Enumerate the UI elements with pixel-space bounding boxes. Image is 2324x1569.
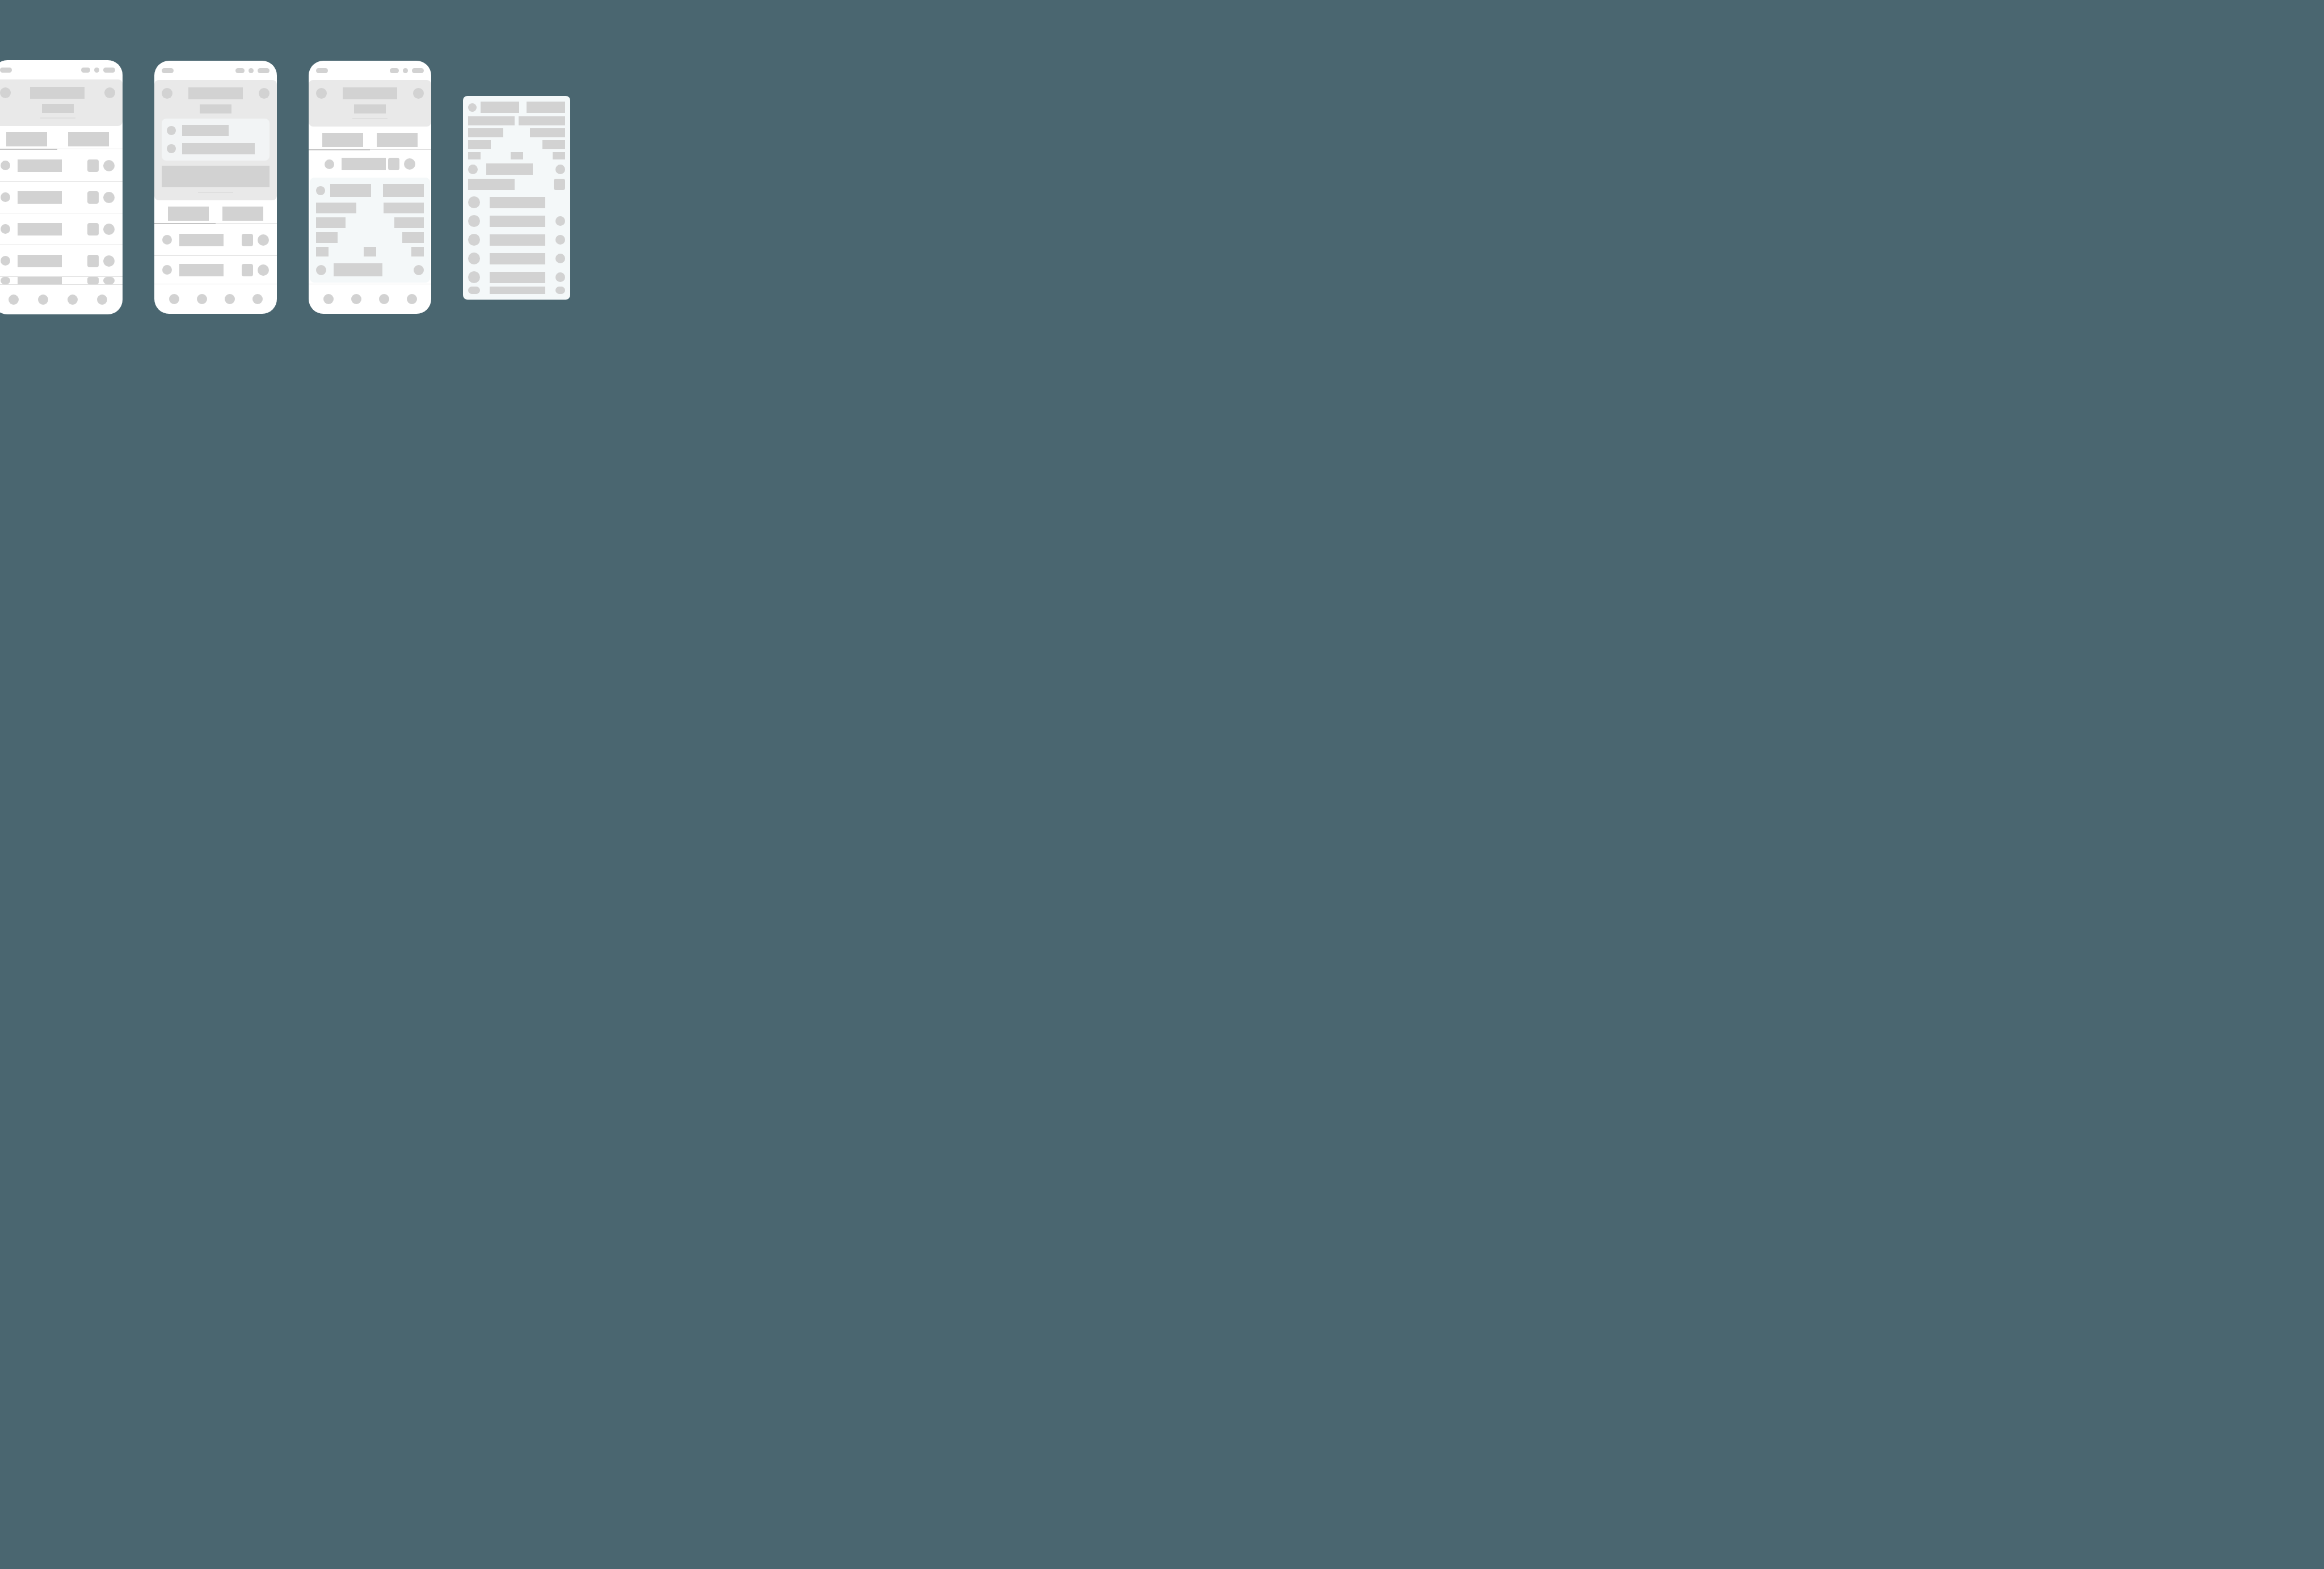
button[interactable]: Tab 3 [216, 284, 243, 314]
button[interactable] [0, 245, 123, 276]
button[interactable]: Tab 3 [370, 284, 398, 314]
button[interactable]: Tab 1 [160, 284, 188, 314]
button[interactable]: Tab 2 [28, 285, 58, 314]
button[interactable]: Tab 1 [0, 285, 28, 314]
button[interactable] [154, 80, 277, 200]
button[interactable] [309, 80, 431, 127]
button[interactable] [154, 200, 277, 221]
button[interactable] [317, 150, 423, 178]
button[interactable] [468, 193, 565, 212]
button[interactable]: Tab 4 [87, 285, 117, 314]
button[interactable] [468, 163, 565, 175]
button[interactable] [0, 79, 123, 126]
button[interactable]: Tab 3 [58, 285, 87, 314]
button[interactable]: Tab 4 [243, 284, 271, 314]
button[interactable] [0, 213, 123, 245]
button[interactable] [468, 212, 565, 230]
button[interactable]: Tab 4 [398, 284, 426, 314]
button[interactable] [0, 126, 123, 146]
button[interactable] [468, 249, 565, 268]
button[interactable] [310, 178, 430, 283]
button[interactable] [154, 256, 277, 284]
button[interactable] [468, 230, 565, 249]
button[interactable] [468, 268, 565, 287]
button[interactable] [309, 127, 431, 147]
button[interactable] [468, 287, 565, 294]
button[interactable] [0, 277, 123, 284]
button[interactable] [0, 150, 123, 181]
button[interactable]: Tab 2 [342, 284, 370, 314]
button[interactable]: Tab 1 [314, 284, 342, 314]
button[interactable]: Tab 2 [188, 284, 216, 314]
button[interactable] [0, 182, 123, 213]
button[interactable] [154, 224, 277, 255]
button[interactable] [162, 119, 270, 161]
